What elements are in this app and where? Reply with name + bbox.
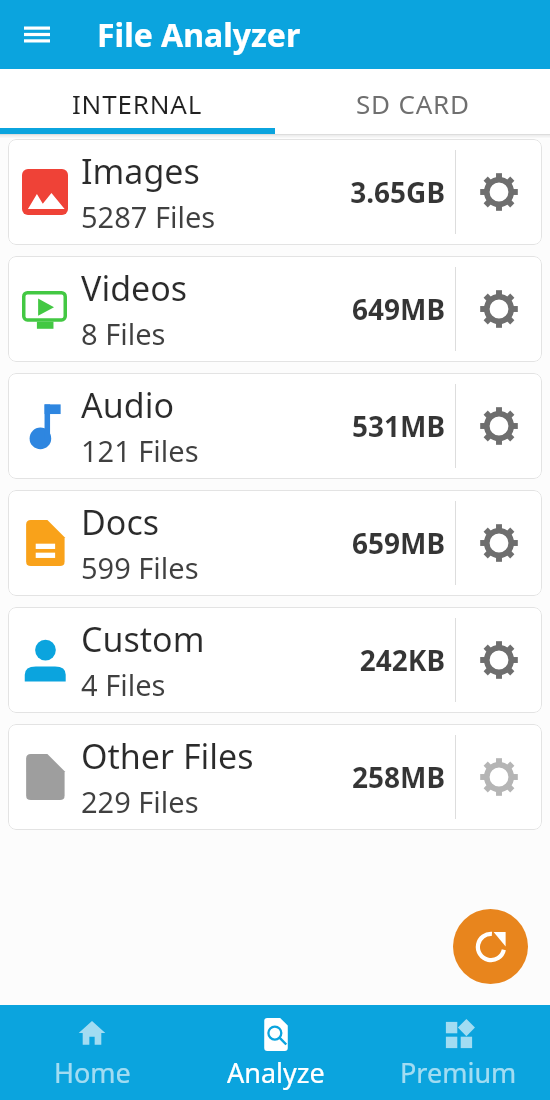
staticText: Premium — [400, 1054, 517, 1091]
staticText: Docs — [81, 499, 159, 545]
button[interactable]: Docs — [8, 490, 542, 596]
button[interactable]: Audio — [8, 373, 542, 479]
staticText: 649MB — [295, 290, 445, 328]
button[interactable] — [456, 256, 542, 362]
staticText: Custom — [81, 616, 205, 662]
staticText: File Analyzer — [97, 13, 301, 57]
staticText: SD CARD — [356, 86, 470, 121]
button[interactable] — [12, 10, 62, 60]
staticText: 5287 Files — [81, 197, 216, 236]
staticText: 3.65GB — [295, 173, 445, 211]
button[interactable] — [456, 724, 542, 830]
staticText: 659MB — [295, 524, 445, 562]
staticText: Videos — [81, 265, 188, 311]
button[interactable]: Analyze — [184, 1005, 367, 1100]
button[interactable]: INTERNAL — [0, 69, 275, 128]
button[interactable] — [456, 490, 542, 596]
staticText: 599 Files — [81, 548, 199, 587]
staticText: Images — [81, 148, 200, 194]
button[interactable] — [456, 607, 542, 713]
staticText: 8 Files — [81, 314, 166, 353]
button[interactable]: SD CARD — [275, 69, 550, 128]
staticText: Analyze — [227, 1054, 325, 1091]
button[interactable]: Premium — [367, 1005, 550, 1100]
staticText: 242KB — [295, 641, 445, 679]
button[interactable]: Home — [0, 1005, 184, 1100]
staticText: 531MB — [295, 407, 445, 445]
button[interactable] — [453, 909, 528, 984]
button[interactable]: Other Files — [8, 724, 542, 830]
staticText: INTERNAL — [72, 86, 203, 121]
button[interactable]: Images — [8, 139, 542, 245]
staticText: 4 Files — [81, 665, 166, 704]
button[interactable]: Custom — [8, 607, 542, 713]
staticText: Other Files — [81, 733, 254, 779]
staticText: 121 Files — [81, 431, 199, 470]
staticText: 229 Files — [81, 782, 199, 821]
button[interactable]: Videos — [8, 256, 542, 362]
staticText: Audio — [81, 382, 174, 428]
button[interactable] — [456, 139, 542, 245]
button[interactable] — [456, 373, 542, 479]
staticText: Home — [54, 1054, 131, 1091]
staticText: 258MB — [295, 758, 445, 796]
